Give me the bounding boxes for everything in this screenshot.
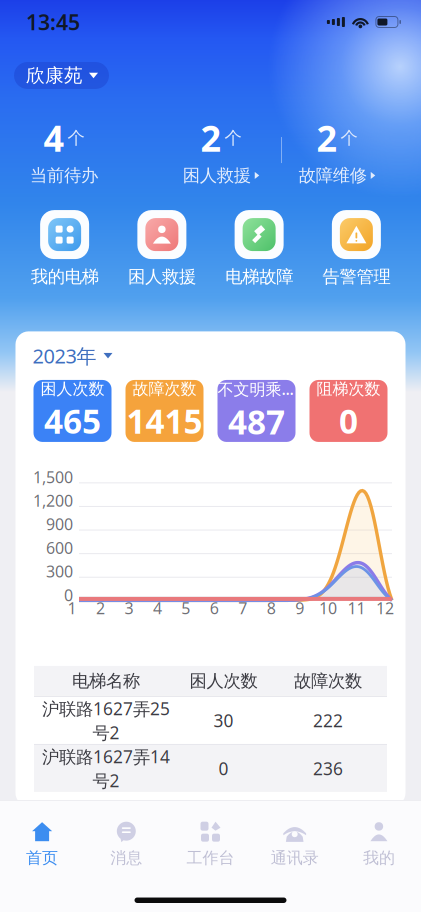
staticText: 2	[96, 597, 105, 618]
staticText: 13:45	[26, 8, 80, 36]
staticText: 首页	[26, 848, 58, 868]
staticText: 故障次数	[294, 670, 362, 692]
staticText: 5	[181, 597, 190, 618]
staticText: 8	[267, 597, 276, 618]
staticText: 4	[43, 114, 64, 162]
staticText: 困人次数	[40, 379, 104, 399]
staticText: 2	[200, 114, 221, 162]
staticText: 10	[319, 597, 337, 618]
staticText: 2	[316, 114, 337, 162]
staticText: 工作台	[186, 848, 234, 868]
staticText: 我的	[363, 848, 395, 868]
staticText: 465	[44, 399, 101, 443]
staticText: 11	[347, 597, 365, 618]
staticText: 不文明乘梯	[217, 378, 295, 399]
button[interactable]: 消息	[84, 821, 168, 866]
staticText: 故障次数	[132, 379, 196, 399]
staticText: 号2	[92, 721, 119, 744]
button[interactable]: 工作台	[168, 821, 253, 866]
button[interactable]: 通讯录	[253, 821, 337, 866]
staticText: 1,200	[33, 490, 73, 511]
button[interactable]: 欣康苑	[14, 62, 109, 89]
staticText: 6	[210, 597, 219, 618]
staticText: 欣康苑	[26, 64, 83, 87]
staticText: 487	[228, 399, 285, 444]
button[interactable]: 告警管理	[308, 210, 405, 287]
staticText: 我的电梯	[31, 266, 99, 287]
staticText: 通讯录	[271, 848, 319, 868]
staticText: 300	[46, 561, 73, 582]
staticText: 个	[224, 127, 241, 149]
staticText: 1	[67, 597, 76, 618]
staticText: 12	[376, 597, 394, 618]
staticText: 阻梯次数	[316, 379, 380, 399]
button[interactable]: 2	[299, 114, 375, 186]
staticText: 沪联路1627弄14	[42, 745, 170, 768]
staticText: 困人次数	[189, 670, 257, 692]
staticText: 222	[313, 709, 343, 732]
staticText: 9	[295, 597, 304, 618]
button[interactable]: 2023年	[32, 342, 405, 369]
staticText: 沪联路1627弄25	[42, 697, 170, 720]
staticText: 236	[313, 757, 343, 780]
button[interactable]: 电梯故障	[210, 210, 308, 287]
staticText: 故障维修	[299, 165, 367, 186]
staticText: 1415	[126, 399, 202, 443]
staticText: 3	[124, 597, 133, 618]
staticText: 个	[340, 127, 357, 149]
staticText: 2023年	[32, 342, 96, 369]
staticText: 0	[64, 584, 73, 605]
staticText: 困人救援	[128, 266, 196, 287]
staticText: 号2	[92, 769, 119, 792]
staticText: 30	[213, 709, 233, 732]
staticText: 4	[153, 597, 162, 618]
staticText: 7	[238, 597, 247, 618]
staticText: 告警管理	[322, 266, 390, 287]
staticText: 困人救援	[183, 165, 251, 186]
staticText: 0	[218, 757, 228, 780]
button[interactable]: 困人救援	[113, 210, 210, 287]
button[interactable]: 我的	[337, 821, 421, 866]
staticText: 0	[339, 399, 358, 443]
staticText: 个	[67, 127, 84, 149]
button[interactable]: 首页	[0, 821, 84, 866]
button[interactable]: 我的电梯	[16, 210, 113, 287]
staticText: 电梯故障	[225, 266, 293, 287]
button[interactable]: 4	[30, 114, 98, 186]
staticText: 消息	[110, 848, 142, 868]
staticText: 1,500	[33, 466, 73, 487]
staticText: 900	[46, 513, 73, 535]
button[interactable]: 2	[183, 114, 259, 186]
staticText: 600	[46, 537, 73, 558]
staticText: 电梯名称	[72, 670, 140, 692]
staticText: 当前待办	[30, 165, 98, 186]
